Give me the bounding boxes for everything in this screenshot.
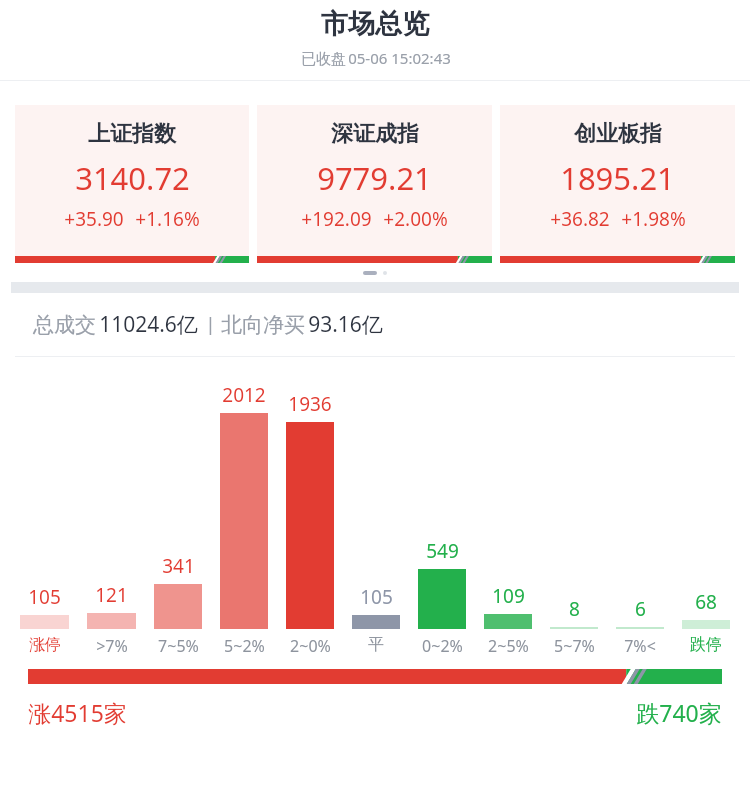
staticText: 105: [360, 584, 393, 610]
staticText: 341: [162, 553, 195, 579]
staticText: 5~2%: [224, 635, 265, 657]
staticText: 549: [426, 538, 459, 564]
staticText: +1.16%: [135, 206, 200, 232]
staticText: 创业板指: [574, 120, 662, 148]
staticText: 8: [569, 596, 580, 622]
staticText: 9779.21: [317, 157, 432, 199]
staticText: 2~0%: [290, 635, 331, 657]
staticText: 2012: [222, 382, 266, 408]
staticText: 1936: [288, 391, 332, 417]
staticText: 上证指数: [88, 120, 176, 148]
staticText: 3140.72: [75, 157, 190, 199]
staticText: +35.90: [64, 206, 124, 232]
staticText: 7%<: [624, 635, 656, 657]
staticText: 5~7%: [554, 635, 595, 657]
button[interactable]: 上证指数: [15, 105, 249, 263]
staticText: 总成交: [30, 310, 99, 339]
staticText: +1.98%: [621, 206, 686, 232]
button[interactable]: 深证成指: [257, 105, 492, 263]
staticText: 涨停: [29, 635, 61, 655]
button[interactable]: 6: [616, 596, 664, 629]
button[interactable]: 2012: [220, 382, 268, 629]
staticText: 平: [368, 635, 384, 655]
staticText: 涨4515家: [28, 697, 127, 728]
staticText: 北向净买: [218, 310, 308, 339]
staticText: 05-06 15:02:43: [348, 48, 451, 68]
staticText: 跌停: [690, 635, 722, 655]
staticText: |: [198, 312, 218, 337]
staticText: 市场总览: [321, 7, 429, 41]
staticText: 93.16亿: [308, 310, 383, 339]
button[interactable]: 121: [87, 582, 136, 629]
staticText: 跌740家: [636, 697, 722, 728]
button[interactable]: 105: [20, 584, 69, 629]
button[interactable]: 341: [154, 553, 202, 629]
button[interactable]: 109: [484, 583, 532, 629]
staticText: +36.82: [550, 206, 610, 232]
button[interactable]: 创业板指: [500, 105, 735, 263]
staticText: 深证成指: [331, 120, 419, 148]
button[interactable]: [28, 669, 722, 684]
staticText: >7%: [96, 635, 128, 657]
button[interactable]: 1936: [286, 391, 334, 629]
staticText: 109: [492, 583, 525, 609]
button[interactable]: 68: [682, 589, 730, 629]
staticText: 68: [695, 589, 717, 615]
staticText: 已收盘: [299, 48, 348, 68]
staticText: 121: [95, 582, 128, 608]
staticText: 6: [635, 596, 646, 622]
staticText: 0~2%: [422, 635, 463, 657]
button[interactable]: 105: [352, 584, 400, 629]
staticText: +2.00%: [383, 206, 448, 232]
staticText: 11024.6亿: [99, 310, 198, 339]
button[interactable]: 8: [550, 596, 598, 629]
staticText: 105: [28, 584, 61, 610]
button[interactable]: 549: [418, 538, 466, 629]
staticText: +192.09: [301, 206, 372, 232]
staticText: 1895.21: [560, 157, 675, 199]
staticText: 2~5%: [488, 635, 529, 657]
staticText: 7~5%: [158, 635, 199, 657]
